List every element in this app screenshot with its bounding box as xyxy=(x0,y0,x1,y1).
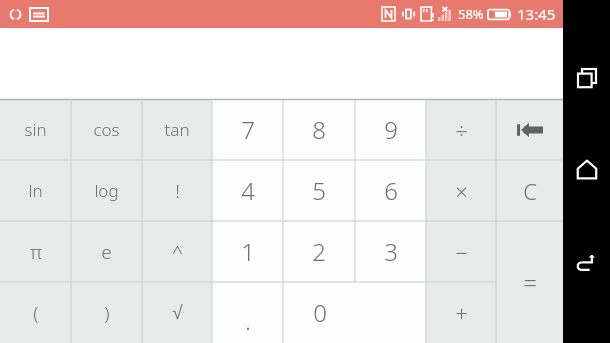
button[interactable]: cos xyxy=(71,99,142,160)
staticText: e xyxy=(101,239,112,265)
staticText: ! xyxy=(175,178,180,204)
button[interactable]: + xyxy=(426,282,496,343)
button[interactable]: ( xyxy=(0,282,71,343)
button[interactable]: sin xyxy=(0,99,71,160)
staticText: π xyxy=(30,239,42,265)
button[interactable]: 4 xyxy=(212,160,283,221)
staticText: × xyxy=(455,176,468,206)
staticText: 8 xyxy=(312,113,326,146)
button[interactable]: ) xyxy=(71,282,142,343)
button[interactable]: . xyxy=(212,282,283,343)
button[interactable]: 6 xyxy=(355,160,426,221)
staticText: ÷ xyxy=(455,115,468,145)
button[interactable]: 1 xyxy=(212,221,283,282)
staticText: cos xyxy=(93,118,120,141)
button[interactable]: Backspace xyxy=(496,99,563,160)
staticText: 9 xyxy=(384,113,398,146)
button[interactable]: ln xyxy=(0,160,71,221)
staticText: 6 xyxy=(384,174,398,207)
button[interactable]: 2 xyxy=(283,221,355,282)
staticText: 13:45 xyxy=(517,4,556,24)
staticText: sin xyxy=(24,118,47,141)
staticText: 1 xyxy=(241,235,255,268)
button[interactable]: × xyxy=(426,160,496,221)
button[interactable]: − xyxy=(426,221,496,282)
staticText: − xyxy=(455,237,468,267)
staticText: ( xyxy=(33,300,39,326)
button[interactable]: Recent apps xyxy=(567,58,607,98)
staticText: ^ xyxy=(172,239,183,265)
staticText: log xyxy=(94,179,119,202)
button[interactable]: ÷ xyxy=(426,99,496,160)
button[interactable]: √ xyxy=(142,282,212,343)
button[interactable]: 3 xyxy=(355,221,426,282)
button[interactable]: ! xyxy=(142,160,212,221)
staticText: 3 xyxy=(384,235,398,268)
staticText: = xyxy=(523,266,537,299)
staticText: 5 xyxy=(312,174,326,207)
button[interactable]: 5 xyxy=(283,160,355,221)
button[interactable]: Home xyxy=(567,150,607,190)
staticText: 2 xyxy=(312,235,326,268)
button[interactable]: tan xyxy=(142,99,212,160)
button[interactable]: log xyxy=(71,160,142,221)
button[interactable]: 7 xyxy=(212,99,283,160)
staticText: √ xyxy=(172,302,183,323)
staticText: tan xyxy=(164,118,190,141)
button[interactable]: e xyxy=(71,221,142,282)
button[interactable]: Back xyxy=(567,242,607,282)
staticText: + xyxy=(455,298,468,328)
button[interactable]: C xyxy=(496,160,563,221)
staticText: 4 xyxy=(241,174,255,207)
button[interactable]: 8 xyxy=(283,99,355,160)
button[interactable]: ^ xyxy=(142,221,212,282)
staticText: 58% xyxy=(458,5,484,23)
staticText: ln xyxy=(28,179,43,202)
staticText: 0 xyxy=(313,296,327,329)
staticText: 7 xyxy=(241,113,255,146)
staticText: C xyxy=(523,176,537,206)
staticText: ) xyxy=(104,300,110,326)
staticText: . xyxy=(245,304,251,337)
button[interactable]: 0 xyxy=(283,282,426,343)
button[interactable]: = xyxy=(496,221,563,343)
button[interactable]: π xyxy=(0,221,71,282)
button[interactable]: 9 xyxy=(355,99,426,160)
